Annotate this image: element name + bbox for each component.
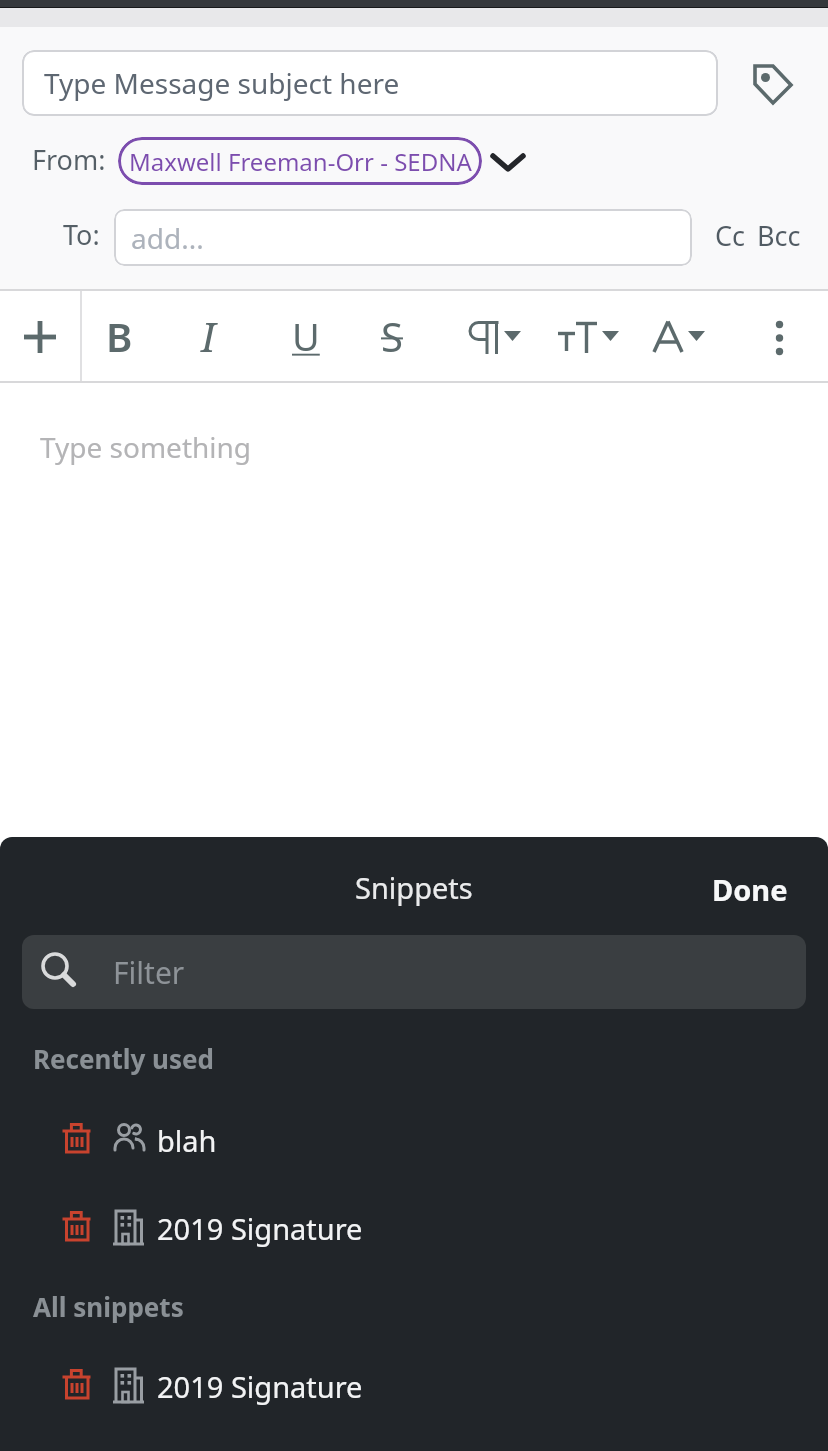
button[interactable] <box>756 306 804 366</box>
button[interactable]: B <box>89 306 149 366</box>
staticText: 2019 Signature <box>157 1367 363 1406</box>
button[interactable] <box>753 64 793 105</box>
button[interactable]: S <box>362 306 422 366</box>
staticText: add... <box>131 219 204 257</box>
button[interactable] <box>58 1366 98 1406</box>
staticText: I <box>201 309 216 363</box>
button[interactable]: Type Message subject here <box>22 50 718 116</box>
staticText: 2019 Signature <box>157 1209 363 1248</box>
staticText: B <box>106 309 133 363</box>
staticText: From: <box>32 141 106 178</box>
staticText: To: <box>63 216 100 253</box>
staticText: Bcc <box>757 217 801 254</box>
button[interactable]: blah <box>157 1116 217 1164</box>
staticText: Type Message subject here <box>44 64 400 102</box>
button[interactable]: 2019 Signature <box>157 1204 363 1252</box>
button[interactable]: add... <box>114 209 692 266</box>
staticText: Cc <box>715 217 746 254</box>
button[interactable] <box>16 313 64 361</box>
button[interactable]: Filter <box>22 935 806 1009</box>
staticText: Type something <box>40 428 252 466</box>
button[interactable]: Maxwell Freeman-Orr - SEDNA <box>118 137 482 185</box>
button[interactable] <box>648 306 712 366</box>
button[interactable] <box>552 306 624 366</box>
button[interactable] <box>58 1208 98 1248</box>
staticText: Snippets <box>355 868 473 907</box>
staticText: blah <box>157 1121 217 1160</box>
button[interactable] <box>460 306 526 366</box>
staticText: S <box>381 309 403 363</box>
staticText: Filter <box>113 952 185 993</box>
staticText: Done <box>712 870 788 909</box>
staticText: All snippets <box>33 1289 184 1324</box>
staticText: Maxwell Freeman-Orr - SEDNA <box>129 145 472 178</box>
staticText: Recently used <box>33 1041 214 1076</box>
staticText: U <box>292 310 320 362</box>
button[interactable]: I <box>178 306 238 366</box>
button[interactable] <box>490 154 526 174</box>
button[interactable]: 2019 Signature <box>157 1362 363 1410</box>
button[interactable]: U <box>276 306 336 366</box>
button[interactable] <box>58 1120 98 1160</box>
button[interactable]: Done <box>696 861 796 909</box>
